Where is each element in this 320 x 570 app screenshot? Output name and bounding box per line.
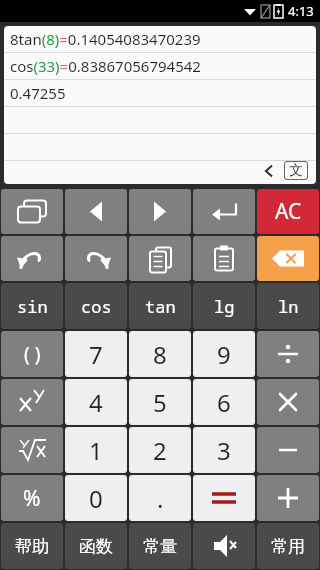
button[interactable]: Paste [193, 236, 255, 281]
staticText: ( ) [24, 341, 41, 367]
staticText: lg [214, 295, 235, 318]
button[interactable]: 常用 [257, 523, 319, 569]
staticText: AC [275, 197, 302, 226]
button[interactable]: 9 [193, 331, 255, 377]
button[interactable]: Back [258, 161, 280, 180]
button[interactable]: Move right [129, 189, 191, 234]
button[interactable]: Multiply [257, 379, 319, 425]
button[interactable]: y-th root of x [1, 427, 63, 473]
staticText: 常量 [143, 536, 177, 557]
button[interactable]: sin [1, 283, 63, 329]
staticText: . [157, 482, 164, 515]
button[interactable]: 常量 [129, 523, 191, 569]
button[interactable]: Minus [257, 427, 319, 473]
staticText: 4 [89, 386, 103, 419]
staticText: 0 [89, 482, 103, 515]
button[interactable]: Undo [1, 236, 63, 281]
button[interactable]: . [129, 475, 191, 521]
staticText: 5 [153, 386, 167, 419]
staticText: 2 [153, 434, 167, 467]
button[interactable]: Mute sound [193, 523, 255, 569]
staticText: 文 [289, 162, 303, 180]
staticText: 8 [153, 338, 167, 371]
button[interactable]: Language [284, 161, 308, 180]
staticText: cos(33)=0.83867056794542 [10, 56, 201, 76]
staticText: 帮助 [15, 536, 49, 557]
button[interactable]: ln [257, 283, 319, 329]
button[interactable]: tan [129, 283, 191, 329]
staticText: % [23, 484, 41, 513]
button[interactable]: x to the power y [1, 379, 63, 425]
button[interactable]: cos [65, 283, 127, 329]
staticText: 函数 [79, 536, 113, 557]
staticText: 9 [217, 338, 231, 371]
button[interactable]: 1 [65, 427, 127, 473]
button[interactable]: 7 [65, 331, 127, 377]
button[interactable]: Move left [65, 189, 127, 234]
button[interactable]: 2 [129, 427, 191, 473]
button[interactable]: Enter [193, 189, 255, 234]
staticText: 常用 [271, 536, 305, 557]
button[interactable]: 4 [65, 379, 127, 425]
button[interactable]: % [1, 475, 63, 521]
staticText: cos [81, 295, 112, 318]
button[interactable]: 6 [193, 379, 255, 425]
staticText: 8tan(8)=0.14054083470239 [10, 29, 201, 49]
button[interactable]: 5 [129, 379, 191, 425]
staticText: 3 [217, 434, 231, 467]
staticText: 0.47255 [10, 83, 66, 103]
staticText: 6 [217, 386, 231, 419]
button[interactable]: AC [257, 189, 319, 234]
staticText: 7 [89, 338, 103, 371]
button[interactable]: lg [193, 283, 255, 329]
button[interactable]: Divide [257, 331, 319, 377]
button[interactable]: 0 [65, 475, 127, 521]
button[interactable]: Windows [1, 189, 63, 234]
button[interactable]: ( ) [1, 331, 63, 377]
button[interactable]: Plus [257, 475, 319, 521]
staticText: tan [145, 295, 176, 318]
staticText: 4:13 [288, 2, 314, 20]
button[interactable]: Redo [65, 236, 127, 281]
button[interactable]: Copy [129, 236, 191, 281]
button[interactable]: 函数 [65, 523, 127, 569]
staticText: 1 [89, 434, 103, 467]
button[interactable]: 帮助 [1, 523, 63, 569]
button[interactable]: 3 [193, 427, 255, 473]
staticText: ln [278, 295, 299, 318]
button[interactable]: 8 [129, 331, 191, 377]
staticText: sin [17, 295, 48, 318]
button[interactable]: Equals [193, 475, 255, 521]
button[interactable]: Backspace [257, 236, 319, 281]
